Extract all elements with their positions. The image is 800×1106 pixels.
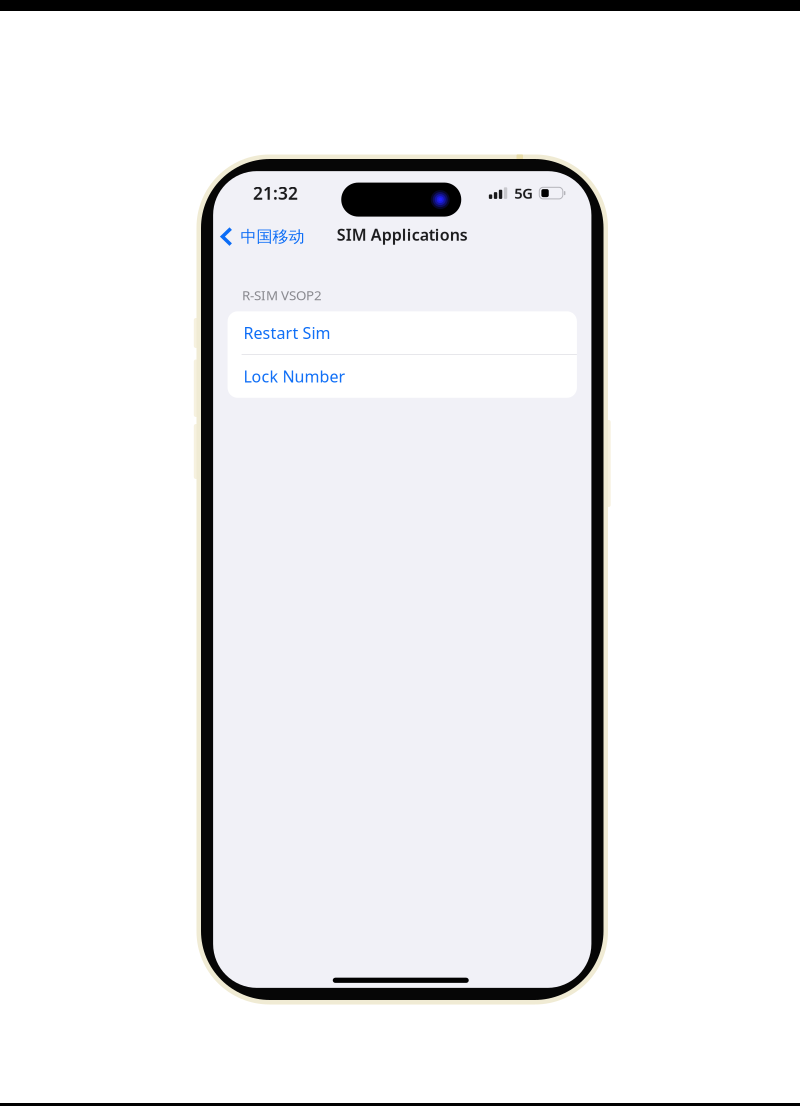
staticText: 21:32 bbox=[253, 182, 298, 205]
button[interactable]: Restart Sim bbox=[228, 311, 577, 354]
staticText: 5G bbox=[514, 183, 533, 203]
button[interactable]: Back to 中国移动 bbox=[213, 222, 305, 251]
button[interactable]: Lock Number bbox=[228, 355, 577, 398]
staticText: Restart Sim bbox=[244, 322, 331, 343]
staticText: R-SIM VSOP2 bbox=[242, 286, 322, 304]
staticText: Lock Number bbox=[244, 366, 346, 387]
staticText: 中国移动 bbox=[241, 227, 305, 246]
staticText: SIM Applications bbox=[337, 224, 468, 245]
